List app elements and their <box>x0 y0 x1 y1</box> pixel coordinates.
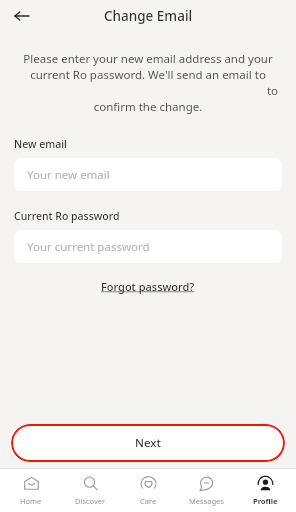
button[interactable]: Forgot password? <box>95 277 201 296</box>
staticText: Please enter your new email address and … <box>18 51 278 67</box>
staticText: to <box>18 83 278 99</box>
button[interactable]: Profile <box>238 469 292 512</box>
button[interactable]: Next <box>11 424 285 462</box>
staticText: confirm the change. <box>18 99 278 115</box>
staticText: Current Ro password <box>14 209 120 223</box>
staticText: current Ro password. We'll send an email… <box>18 67 278 83</box>
button[interactable]: Messages <box>179 469 233 512</box>
button[interactable]: Your current password <box>14 230 282 263</box>
staticText: Your new email <box>27 167 110 183</box>
staticText: Care <box>140 496 157 506</box>
button[interactable]: Home <box>4 469 58 512</box>
button[interactable]: Back <box>8 2 36 30</box>
button[interactable]: Your new email <box>14 158 282 191</box>
staticText: Change Email <box>104 7 193 25</box>
staticText: New email <box>14 137 67 151</box>
staticText: Profile <box>253 496 278 506</box>
staticText: Your current password <box>27 239 150 255</box>
staticText: Next <box>135 435 161 451</box>
staticText: Discover <box>75 496 106 506</box>
staticText: Messages <box>189 496 224 506</box>
button[interactable]: Care <box>121 469 175 512</box>
button[interactable]: Discover <box>63 469 117 512</box>
staticText: Forgot password? <box>101 279 195 294</box>
staticText: Home <box>20 496 42 506</box>
